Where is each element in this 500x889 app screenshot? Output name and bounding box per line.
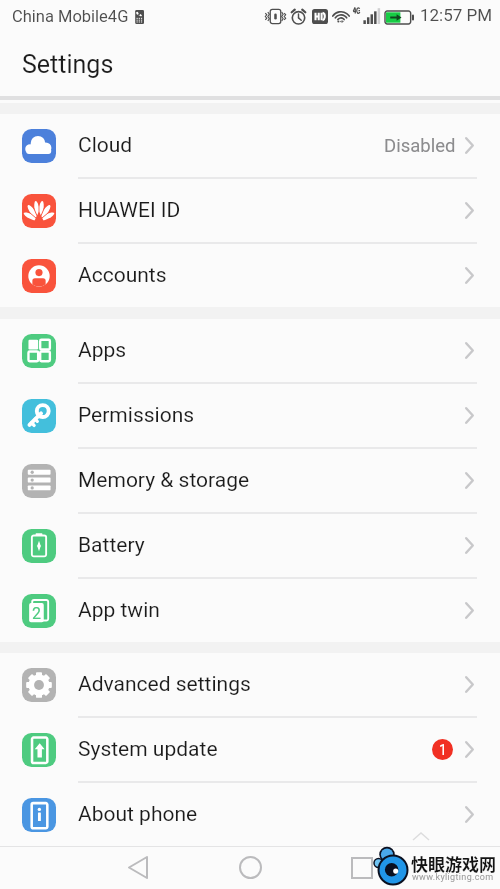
button[interactable]: Battery [0,514,500,577]
button[interactable]: Advanced settings [0,653,500,716]
staticText: 1 [439,742,447,758]
staticText: HUAWEI ID [78,198,181,223]
staticText: System update [78,737,218,762]
staticText: Settings [22,50,114,79]
staticText: 12:57 PM [420,5,493,25]
staticText: App twin [78,598,160,623]
staticText: Permissions [78,403,195,428]
staticText: Advanced settings [78,672,251,697]
staticText: Disabled [384,135,456,157]
staticText: China Mobile4G [12,7,129,26]
staticText: 快眼游戏网 [411,851,496,876]
button[interactable]: Permissions [0,384,500,447]
button[interactable]: Recent apps [334,846,390,889]
staticText: Cloud [78,133,133,158]
button[interactable]: Apps [0,319,500,382]
button[interactable]: 2 [0,579,500,642]
staticText: www.kyligting.com [412,872,494,883]
button[interactable]: About phone [0,783,500,846]
button[interactable]: Home [222,846,278,889]
staticText: 2 [32,604,41,623]
staticText: Accounts [78,263,167,288]
button[interactable]: Accounts [0,244,500,307]
button[interactable]: Memory & storage [0,449,500,512]
staticText: Apps [78,338,127,363]
staticText: Memory & storage [78,468,250,493]
staticText: About phone [78,802,198,827]
button[interactable]: Back [110,846,166,889]
staticText: Battery [78,533,145,558]
button[interactable]: HUAWEI ID [0,179,500,242]
button[interactable]: System update [0,718,500,781]
button[interactable]: Cloud [0,114,500,177]
